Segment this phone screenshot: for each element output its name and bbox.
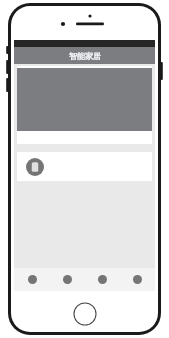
button[interactable]: Home: [14, 268, 50, 291]
button[interactable]: Home: [73, 302, 97, 326]
button[interactable]: Scenes: [85, 268, 120, 291]
button[interactable]: Device: [17, 152, 152, 181]
button[interactable]: Profile: [120, 268, 155, 291]
button[interactable]: 智能家居: [14, 47, 155, 64]
button[interactable]: Rooms: [50, 268, 85, 291]
button[interactable]: [17, 66, 152, 144]
staticText: 智能家居: [69, 51, 101, 61]
other: Device: [26, 158, 44, 176]
